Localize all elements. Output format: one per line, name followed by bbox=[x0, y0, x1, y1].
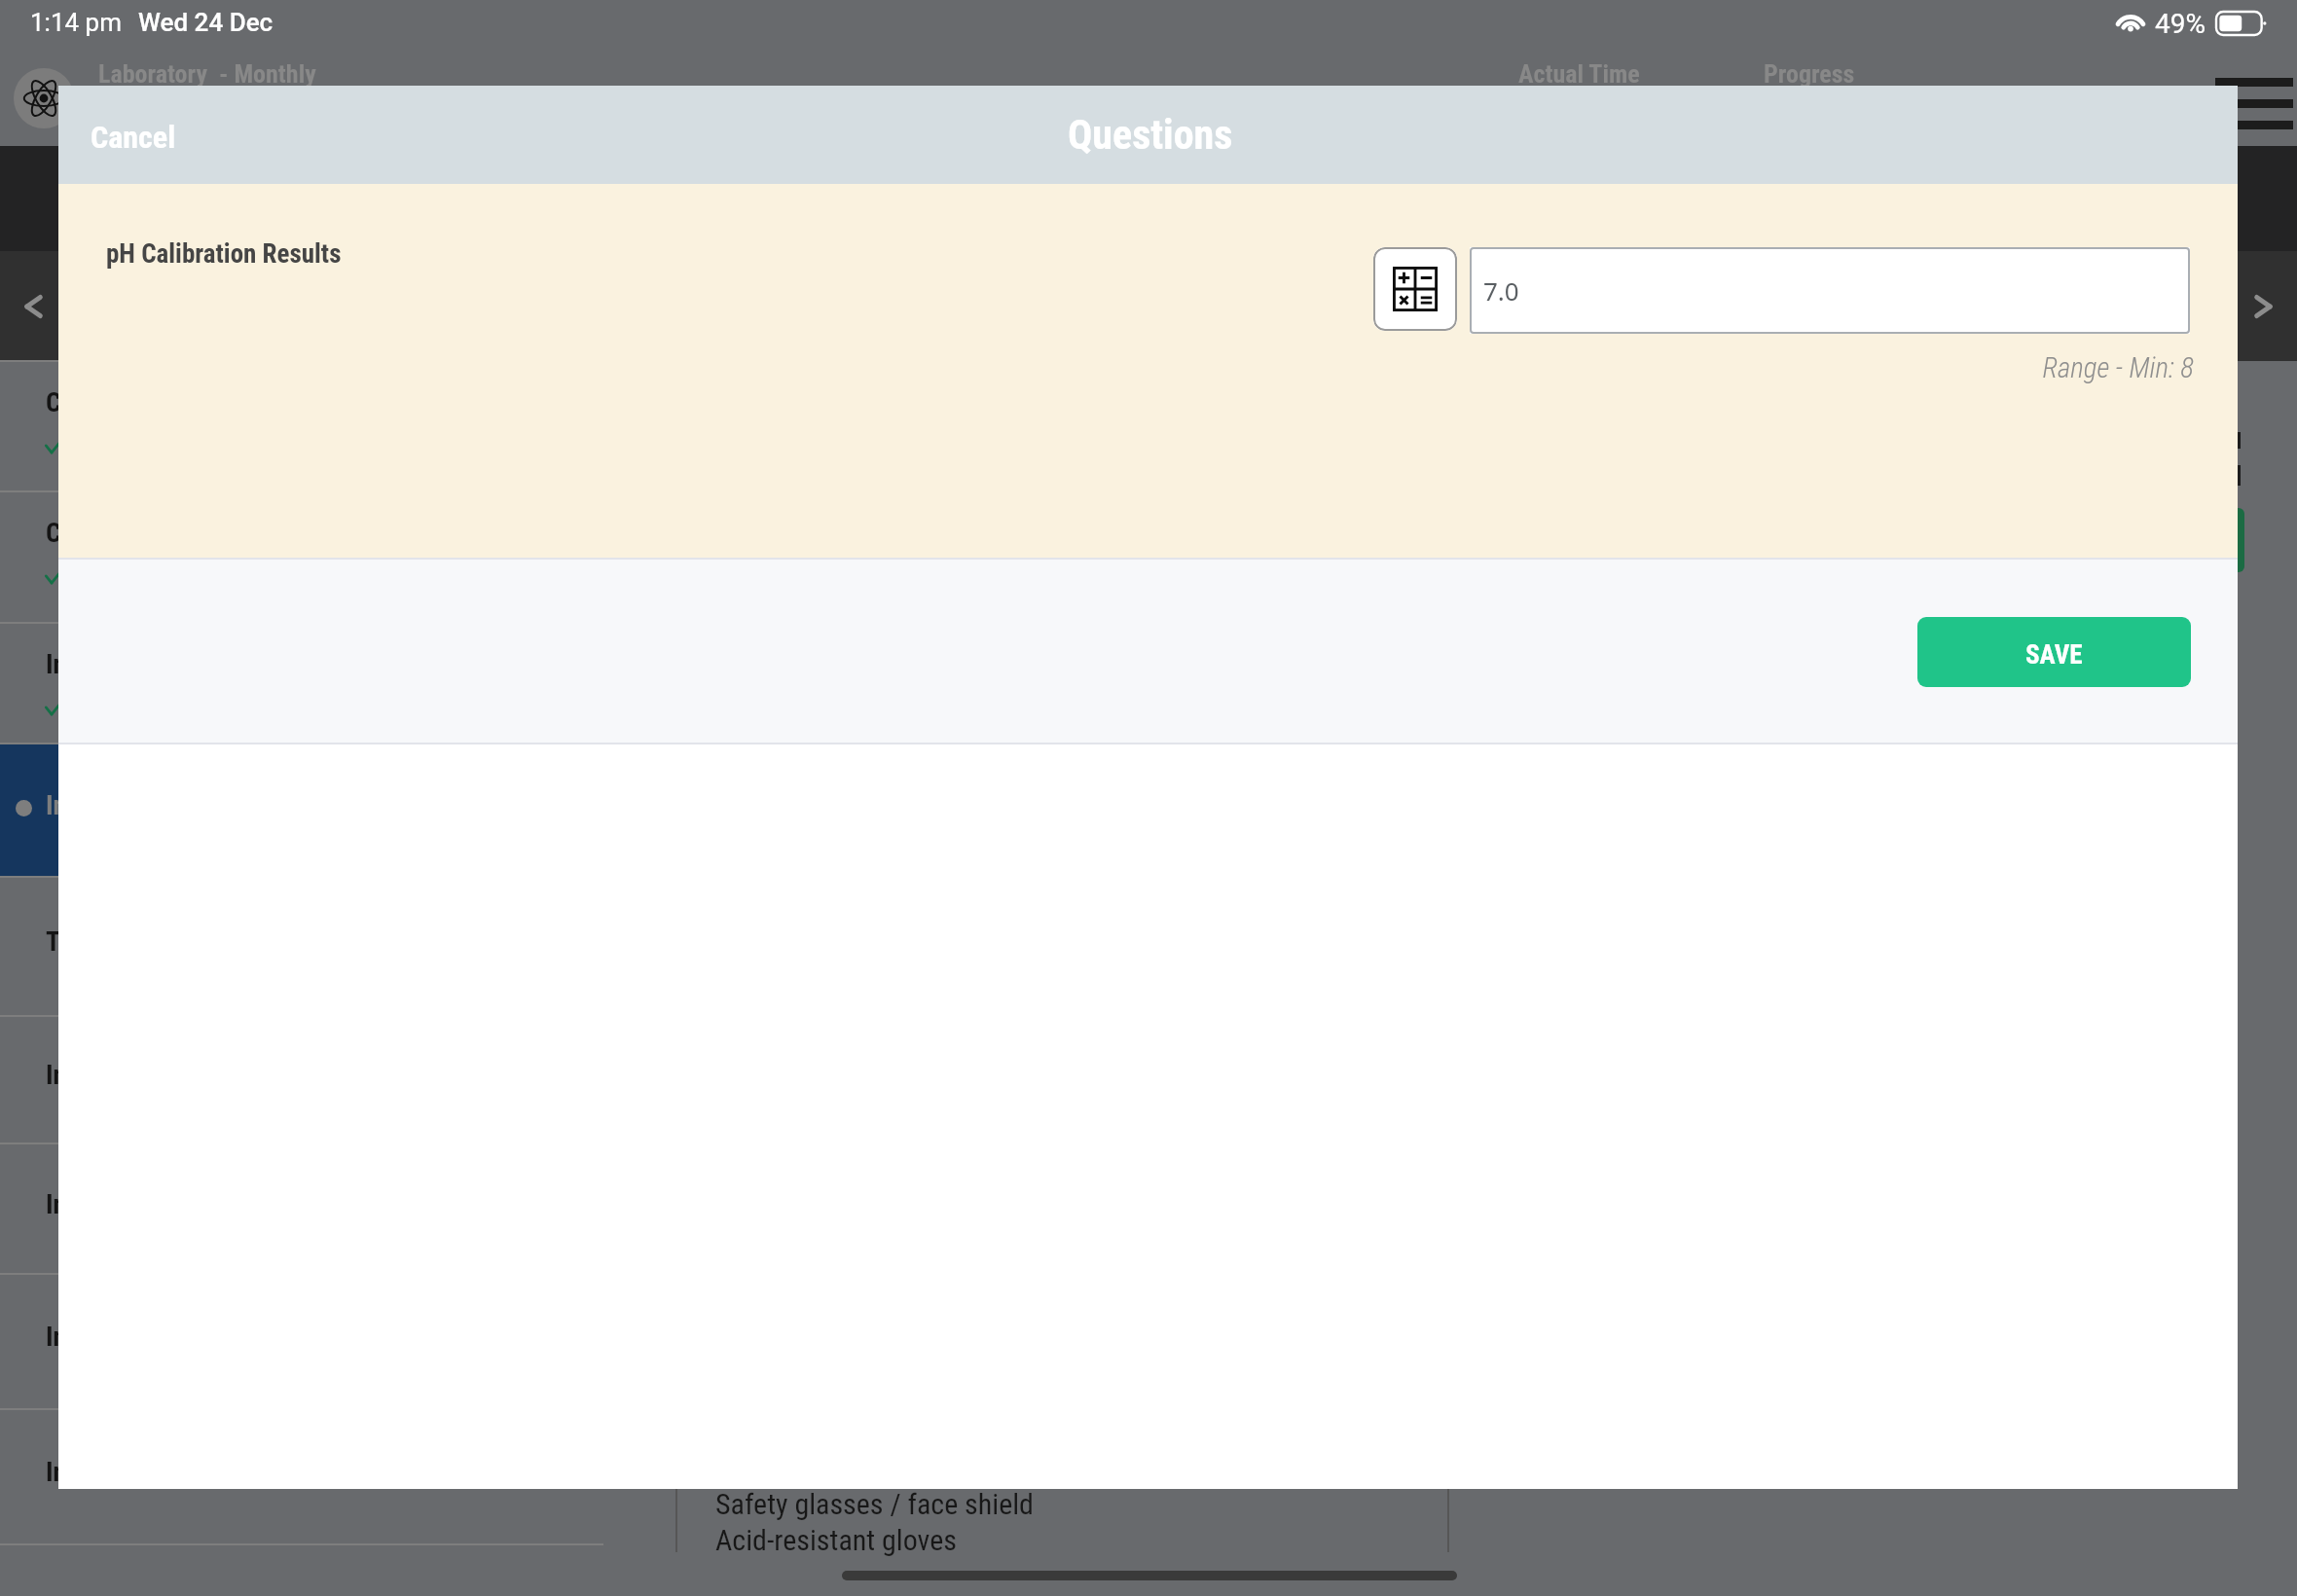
button[interactable]: Previous bbox=[0, 251, 68, 361]
button[interactable]: Temperature log bbox=[0, 876, 603, 1015]
button[interactable]: Inspect fume hood bbox=[0, 622, 603, 743]
staticText: Acid-resistant gloves bbox=[715, 1523, 957, 1557]
staticText: Temperature log bbox=[46, 925, 225, 958]
staticText: Cancel bbox=[91, 119, 176, 156]
button[interactable]: SAVE bbox=[1917, 617, 2191, 687]
staticText: Inspect safety kit bbox=[46, 1456, 236, 1488]
button[interactable]: Incubator check bbox=[0, 1273, 603, 1408]
button[interactable]: Next bbox=[2229, 251, 2297, 361]
staticText: 49% bbox=[2155, 8, 2206, 40]
staticText: Inspect fume hood bbox=[46, 648, 249, 680]
button[interactable]: Instrument check bbox=[0, 743, 603, 876]
button[interactable]: Cancel bbox=[74, 103, 193, 171]
staticText: Range - Min: 8 bbox=[58, 351, 2194, 384]
staticText: Questions bbox=[1068, 111, 1233, 159]
staticText: 7.0 bbox=[1483, 273, 1519, 308]
staticText: SAVE bbox=[2025, 639, 2083, 671]
staticText: Calibrate pH meter bbox=[46, 386, 251, 418]
button[interactable]: Inventory audit bbox=[0, 1015, 603, 1143]
button[interactable]: Check reagent levels bbox=[0, 490, 603, 622]
staticText: Incubator check bbox=[46, 1321, 221, 1353]
staticText: Safety glasses / face shield bbox=[715, 1487, 1034, 1521]
staticText: Actual Time bbox=[1518, 59, 1640, 89]
staticText: Wed 24 Dec bbox=[138, 8, 273, 37]
button[interactable]: Calibrate pH meter bbox=[0, 360, 603, 490]
staticText: pH Calibration Results bbox=[106, 238, 342, 270]
staticText: Check reagent levels bbox=[46, 517, 273, 549]
staticText: Instrument check bbox=[46, 789, 237, 821]
button[interactable]: Calculator bbox=[1373, 247, 1457, 331]
staticText: 1:14 pm bbox=[30, 8, 122, 37]
staticText: Inventory audit bbox=[46, 1059, 210, 1091]
button[interactable]: 7.0 bbox=[1470, 247, 2190, 334]
staticText: Laboratory - Monthly bbox=[98, 59, 316, 89]
staticText: Instrument cleaning bbox=[46, 1188, 265, 1220]
button[interactable]: Account bbox=[14, 68, 74, 128]
staticText: Progress bbox=[1764, 59, 1855, 89]
button[interactable]: Inspect safety kit bbox=[0, 1408, 603, 1543]
button[interactable]: Menu bbox=[2206, 64, 2297, 146]
button[interactable]: Instrument cleaning bbox=[0, 1143, 603, 1273]
